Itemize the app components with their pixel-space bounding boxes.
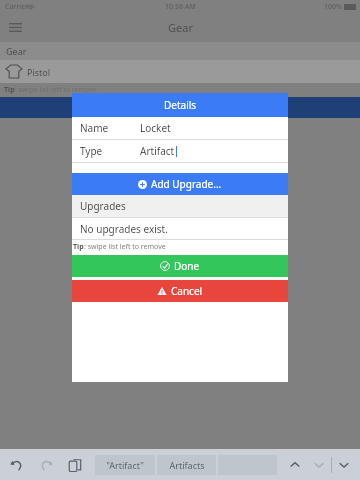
staticText: : swipe list left to remove: [15, 85, 97, 95]
button[interactable]: Done: [72, 255, 288, 277]
staticText: 10:56 AM: [165, 2, 196, 12]
staticText: Artifacts: [169, 459, 205, 471]
button[interactable]: Undo: [5, 453, 29, 477]
staticText: Tip: [73, 242, 84, 252]
staticText: Upgrades: [80, 199, 126, 213]
staticText: "Artifact": [106, 459, 144, 471]
staticText: Gear: [6, 45, 27, 57]
staticText: : swipe list left to remove: [84, 242, 166, 252]
staticText: 100%: [324, 2, 342, 12]
button[interactable]: Copy: [63, 453, 87, 477]
staticText: Cancel: [171, 284, 203, 298]
staticText: Type: [80, 144, 103, 158]
staticText: Locket: [140, 121, 171, 135]
button[interactable]: Next: [307, 453, 331, 477]
button[interactable]: Artifacts: [157, 455, 216, 475]
button[interactable]: Cancel: [72, 280, 288, 302]
button[interactable]: Name: [72, 117, 288, 139]
button[interactable]: Details: [72, 93, 288, 117]
button[interactable]: Previous: [283, 453, 307, 477]
staticText: No upgrades exist.: [80, 222, 168, 236]
button[interactable]: Type: [72, 140, 288, 162]
staticText: Done: [174, 259, 200, 273]
staticText: Artifact: [140, 144, 175, 158]
staticText: Pistol: [27, 66, 51, 78]
staticText: Name: [80, 121, 109, 135]
button[interactable]: Gear: [0, 42, 360, 60]
button[interactable]: Redo: [34, 453, 58, 477]
staticText: Tip: [4, 85, 15, 95]
staticText: Add Upgrade...: [151, 177, 222, 191]
button[interactable]: "Artifact": [95, 455, 155, 475]
button[interactable]: Add Upgrade...: [72, 173, 288, 195]
button[interactable]: Hide keyboard: [332, 453, 356, 477]
button[interactable]: Pistol: [0, 60, 360, 83]
staticText: Details: [164, 98, 197, 112]
staticText: Carrier: [5, 2, 29, 12]
staticText: Gear: [168, 20, 193, 35]
button[interactable]: Menu: [4, 16, 26, 38]
